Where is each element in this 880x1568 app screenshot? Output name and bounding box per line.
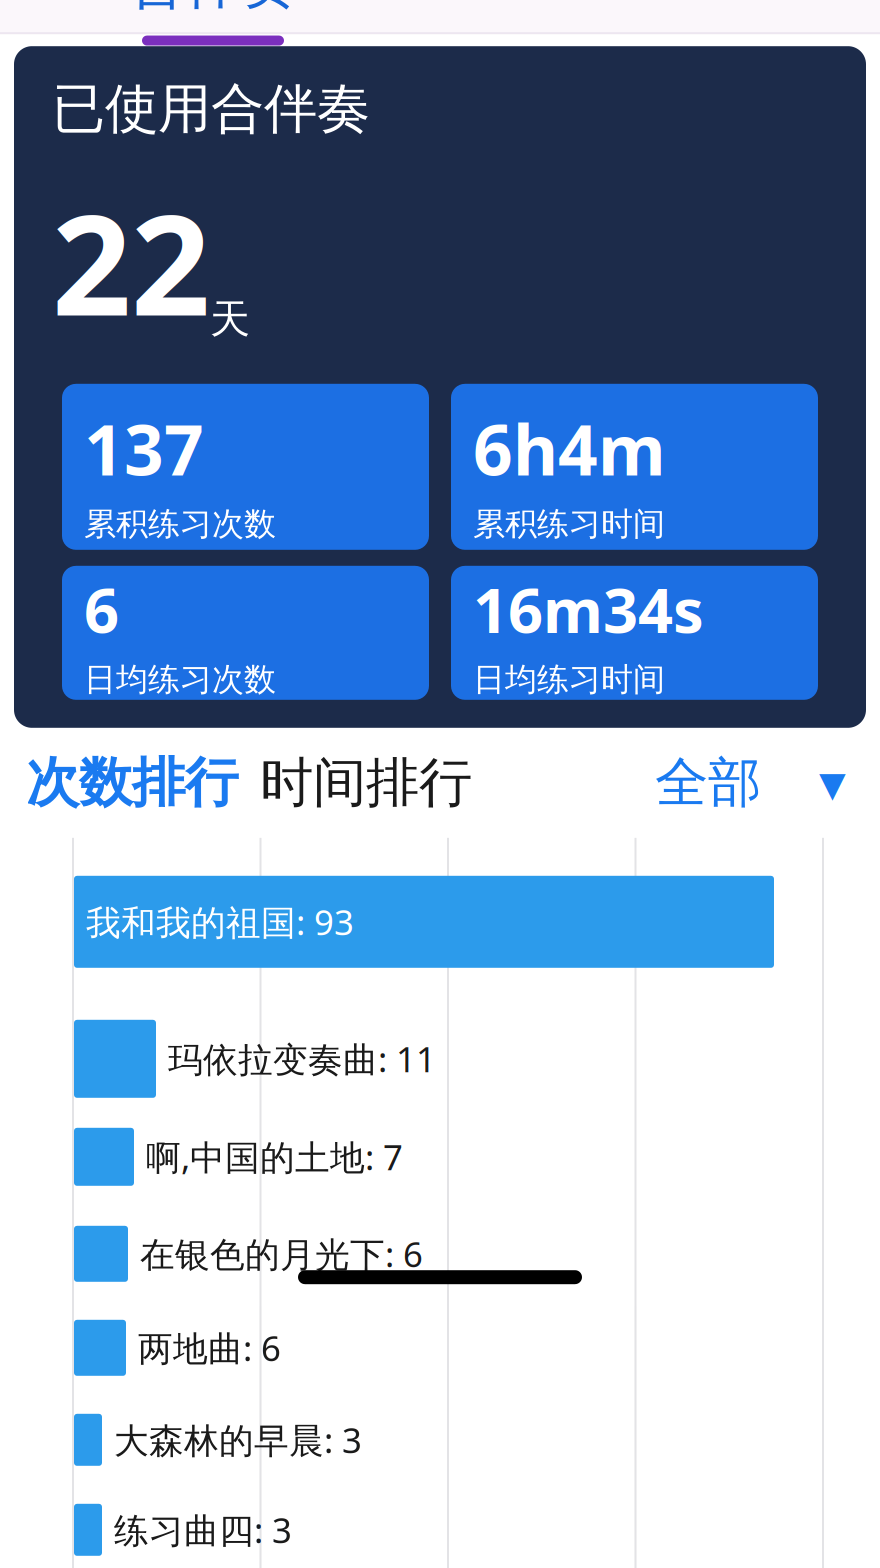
button[interactable]: 137 xyxy=(62,384,429,550)
button[interactable]: 合伴奏 xyxy=(108,0,318,46)
button[interactable]: 次数排行 xyxy=(26,750,238,816)
staticText: 6 xyxy=(84,568,119,650)
staticText: 合伴奏 xyxy=(129,0,297,18)
button[interactable]: 时间排行 xyxy=(260,750,472,816)
staticText: 累积练习时间 xyxy=(473,504,665,544)
staticText: 137 xyxy=(84,402,204,495)
staticText: 大森林的早晨: 3 xyxy=(114,1417,362,1463)
staticText: 6h4m xyxy=(473,402,666,495)
staticText: ▾ xyxy=(819,753,846,813)
staticText: 22 xyxy=(52,170,210,354)
staticText: 玛依拉变奏曲: 11 xyxy=(168,1036,436,1082)
staticText: 累积练习次数 xyxy=(84,504,276,544)
staticText: 啊,中国的土地: 7 xyxy=(146,1134,403,1180)
staticText: 天 xyxy=(210,295,250,344)
staticText: 全部 xyxy=(655,750,761,816)
staticText: 两地曲: 6 xyxy=(138,1325,281,1371)
staticText: 已使用合伴奏 xyxy=(52,76,370,142)
staticText: 日均练习时间 xyxy=(473,660,665,699)
button[interactable]: 全部 xyxy=(655,750,846,816)
staticText: 次数排行 xyxy=(26,750,238,816)
staticText: 16m34s xyxy=(473,568,704,650)
button[interactable]: 16m34s xyxy=(451,566,818,700)
staticText: 时间排行 xyxy=(260,750,472,816)
staticText: 在银色的月光下: 6 xyxy=(140,1231,423,1277)
staticText: 日均练习次数 xyxy=(84,660,276,699)
staticText: 练习曲四: 3 xyxy=(114,1507,292,1553)
staticText: 我和我的祖国: 93 xyxy=(86,899,354,945)
button[interactable]: 6 xyxy=(62,566,429,700)
button[interactable]: 6h4m xyxy=(451,384,818,550)
